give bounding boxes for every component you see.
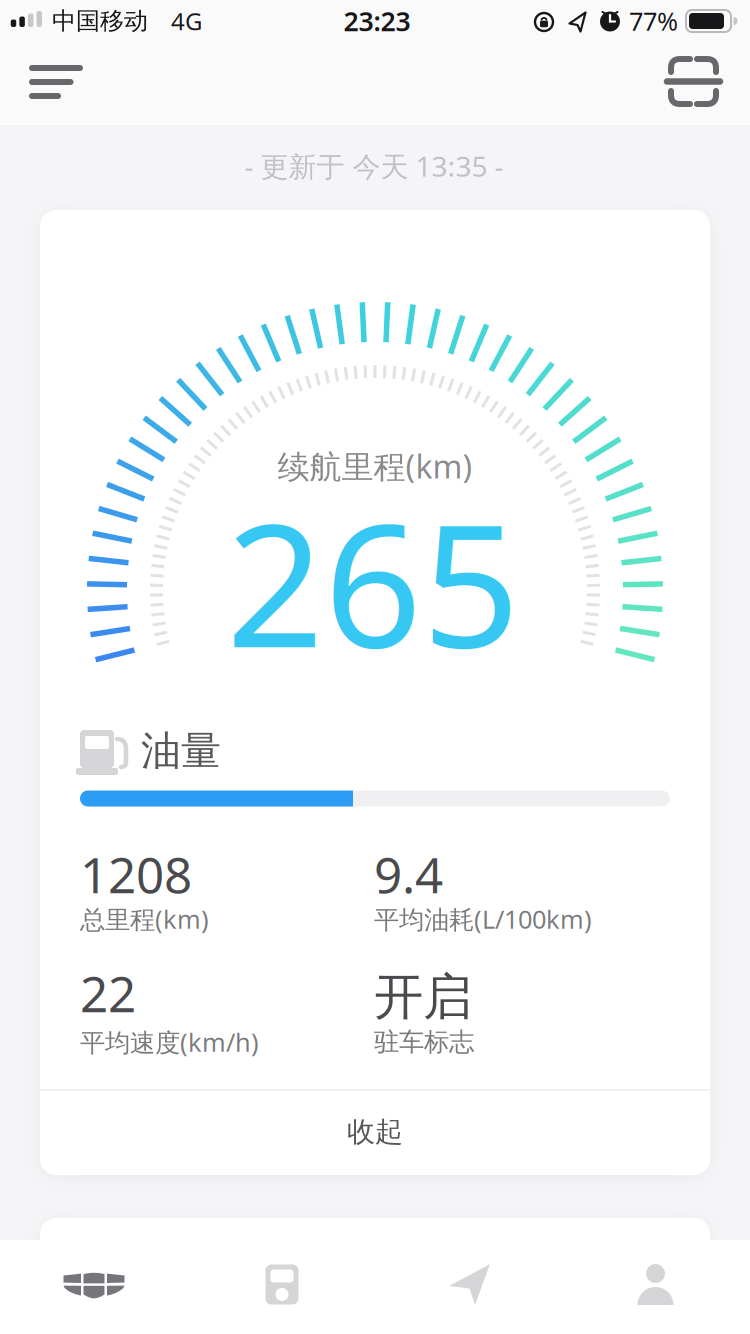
button[interactable]: 收起 <box>40 1090 710 1174</box>
staticText: 23:23 <box>343 3 410 39</box>
staticText: 77% <box>629 4 678 38</box>
button[interactable] <box>562 1240 750 1334</box>
button[interactable] <box>655 43 731 119</box>
staticText: 续航里程(km) <box>277 445 472 487</box>
staticText: 开启 <box>374 967 472 1027</box>
staticText: 驻车标志 <box>374 1026 474 1057</box>
button[interactable] <box>18 44 94 120</box>
staticText: 油量 <box>141 726 221 775</box>
staticText: 1208 <box>80 841 192 907</box>
staticText: 平均速度(km/h) <box>80 1025 259 1059</box>
staticText: 4G <box>171 5 202 37</box>
staticText: 265 <box>226 468 520 694</box>
staticText: - 更新于 今天 13:35 - <box>244 147 503 185</box>
staticText: 总里程(km) <box>80 902 209 936</box>
button[interactable] <box>0 1240 187 1334</box>
staticText: 平均油耗(L/100km) <box>374 902 592 936</box>
staticText: 中国移动 <box>52 6 148 36</box>
button[interactable] <box>375 1240 562 1334</box>
button[interactable] <box>187 1240 375 1334</box>
staticText: 9.4 <box>374 841 443 907</box>
staticText: 收起 <box>347 1115 403 1149</box>
staticText: 22 <box>80 960 136 1026</box>
